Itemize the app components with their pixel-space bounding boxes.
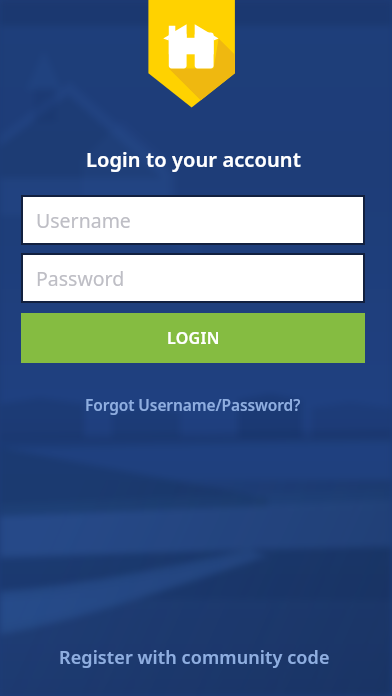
staticText: Register with community code xyxy=(59,645,330,670)
button[interactable]: LOGIN xyxy=(21,313,365,363)
button[interactable]: Forgot Username/Password? xyxy=(75,390,311,419)
button[interactable]: Register with community code xyxy=(49,641,340,674)
staticText: Username xyxy=(36,207,131,234)
button[interactable]: Username xyxy=(21,195,365,245)
staticText: LOGIN xyxy=(167,327,220,349)
staticText: Login to your account xyxy=(86,146,301,173)
staticText: Password xyxy=(36,265,125,292)
staticText: Forgot Username/Password? xyxy=(85,394,301,415)
button[interactable]: Password xyxy=(21,253,365,303)
